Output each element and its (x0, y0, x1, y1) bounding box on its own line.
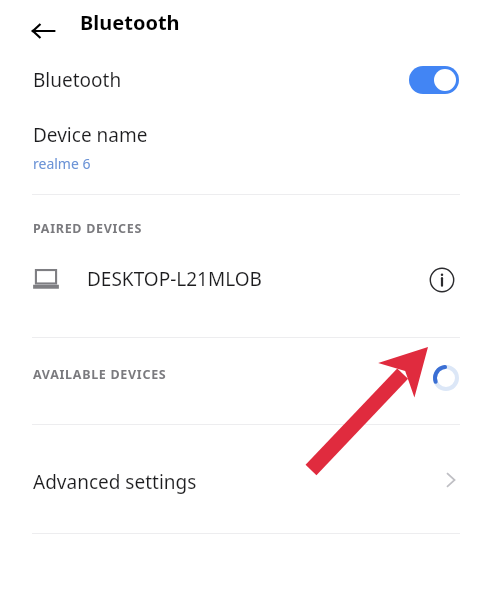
staticText: AVAILABLE DEVICES (33, 366, 167, 383)
staticText: Bluetooth (80, 9, 180, 36)
button[interactable]: Bluetooth on (409, 66, 459, 94)
staticText: Bluetooth (33, 67, 122, 93)
staticText: Device name (33, 122, 148, 148)
button[interactable]: Advanced settings (0, 425, 491, 533)
button[interactable]: Device details (424, 262, 460, 298)
button[interactable]: DESKTOP-L21MLOB (0, 253, 491, 337)
button[interactable]: Back (22, 10, 64, 52)
staticText: Advanced settings (33, 469, 197, 495)
staticText: PAIRED DEVICES (33, 220, 143, 237)
button[interactable]: Bluetooth (0, 48, 491, 110)
staticText: DESKTOP-L21MLOB (87, 266, 262, 292)
button[interactable]: Device name (0, 110, 491, 194)
staticText: realme 6 (33, 154, 91, 173)
